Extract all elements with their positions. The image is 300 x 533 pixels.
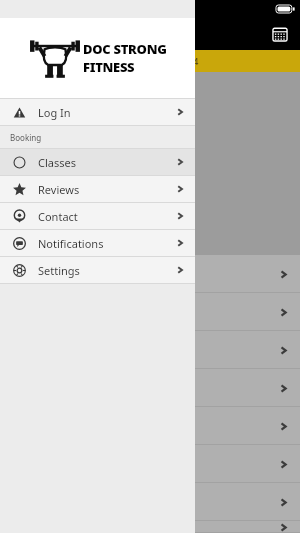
button[interactable]: Reviews: [0, 176, 195, 202]
button[interactable]: [0, 407, 300, 445]
button[interactable]: [0, 255, 300, 293]
button[interactable]: [0, 521, 300, 533]
button[interactable]: Log In: [0, 99, 195, 125]
button[interactable]: [0, 293, 300, 331]
staticText: Contact: [38, 209, 78, 224]
staticText: Booking: [10, 132, 42, 143]
staticText: DOC STRONG: [83, 40, 167, 58]
staticText: 24: [188, 55, 199, 67]
staticText: Classes: [38, 155, 76, 170]
button[interactable]: Classes: [0, 149, 195, 175]
staticText: Log In: [38, 105, 71, 120]
button[interactable]: [0, 445, 300, 483]
button[interactable]: Settings: [0, 257, 195, 283]
button[interactable]: [0, 369, 300, 407]
button[interactable]: Calendar: [270, 24, 290, 44]
staticText: Notifications: [38, 236, 104, 251]
button[interactable]: [0, 483, 300, 521]
button[interactable]: Contact: [0, 203, 195, 229]
button[interactable]: [0, 331, 300, 369]
staticText: Reviews: [38, 182, 80, 197]
button[interactable]: Notifications: [0, 230, 195, 256]
staticText: Settings: [38, 263, 80, 278]
staticText: FITNESS: [83, 58, 135, 76]
